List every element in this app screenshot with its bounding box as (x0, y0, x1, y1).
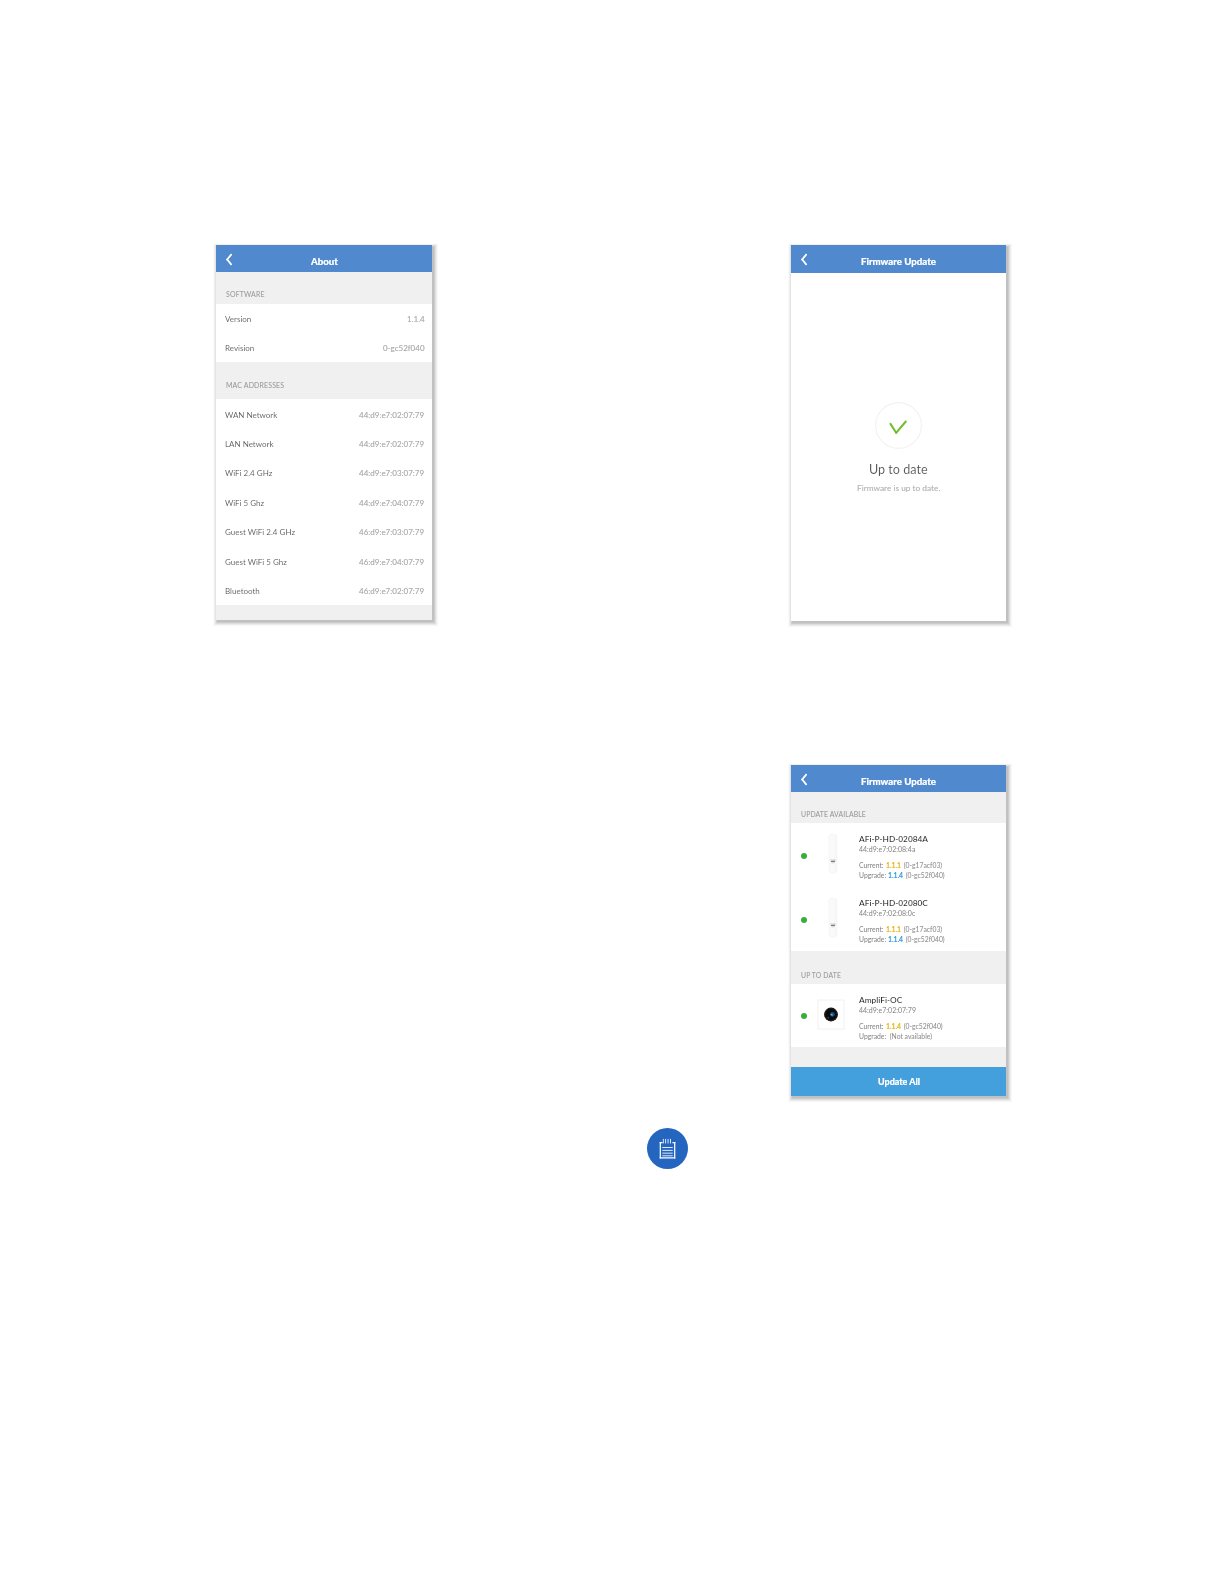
staticText: 46:d9:e7:03:07:79 (359, 527, 425, 537)
button[interactable]: Bluetooth (216, 576, 432, 605)
staticText: Current: (859, 861, 886, 869)
staticText: (0-gc52f040) (904, 871, 945, 879)
staticText: Firmware is up to date. (857, 483, 941, 493)
staticText: (0-gc52f040) (904, 935, 945, 943)
button[interactable]: AFi-P-HD-02084A (791, 823, 1006, 887)
staticText: About (311, 255, 338, 267)
staticText: (0-g17acf03) (902, 861, 943, 869)
staticText: WiFi 2.4 GHz (225, 468, 273, 478)
button[interactable]: Version (216, 304, 432, 333)
staticText: 44:d9:e7:04:07:79 (359, 498, 425, 508)
staticText: AmpliFi-OC (859, 995, 903, 1005)
staticText: Update All (878, 1076, 920, 1087)
staticText: 1.1.1 (886, 861, 902, 869)
staticText: MAC ADDRESSES (226, 381, 285, 389)
staticText: WiFi 5 Ghz (225, 498, 265, 508)
staticText: 1.1.1 (886, 925, 902, 933)
staticText: 46:d9:e7:02:07:79 (359, 586, 425, 596)
staticText: 1.1.4 (407, 314, 425, 324)
button[interactable]: Update All (791, 1067, 1006, 1096)
staticText: 44:d9:e7:02:07:79 (359, 439, 425, 449)
staticText: 44:d9:e7:02:08:4a (859, 845, 916, 853)
staticText: Upgrade: (859, 871, 888, 879)
staticText: 46:d9:e7:04:07:79 (359, 557, 425, 567)
staticText: SOFTWARE (226, 290, 265, 298)
staticText: 44:d9:e7:02:08:0c (859, 909, 916, 917)
staticText: UP TO DATE (801, 971, 841, 979)
staticText: 1.1.4 (888, 935, 904, 943)
staticText: 44:d9:e7:02:07:79 (859, 1006, 916, 1014)
button[interactable]: Guest WiFi 2.4 GHz (216, 517, 432, 546)
staticText: Guest WiFi 2.4 GHz (225, 527, 296, 537)
staticText: 0-gc52f040 (383, 343, 425, 353)
staticText: Guest WiFi 5 Ghz (225, 557, 287, 567)
staticText: Current: (859, 925, 886, 933)
button[interactable]: WAN Network (216, 400, 432, 429)
staticText: (0-g17acf03) (902, 925, 943, 933)
staticText: (Not available) (888, 1032, 932, 1040)
staticText: UPDATE AVAILABLE (801, 810, 866, 818)
staticText: 1.1.4 (888, 871, 904, 879)
staticText: AFi-P-HD-02080C (859, 898, 928, 908)
button[interactable]: Release notes (647, 1128, 688, 1169)
button[interactable]: Back (796, 251, 812, 267)
staticText: Revision (225, 343, 255, 353)
staticText: Current: (859, 1022, 886, 1030)
button[interactable]: AmpliFi-OC (791, 984, 1006, 1047)
staticText: Upgrade: (859, 1032, 888, 1040)
button[interactable]: AFi-P-HD-02080C (791, 887, 1006, 951)
staticText: WAN Network (225, 410, 278, 420)
staticText: 1.1.4 (886, 1022, 902, 1030)
button[interactable]: Back (221, 251, 237, 267)
staticText: Firmware Update (861, 255, 936, 267)
staticText: Upgrade: (859, 935, 888, 943)
button[interactable]: LAN Network (216, 429, 432, 458)
staticText: LAN Network (225, 439, 274, 449)
staticText: 44:d9:e7:02:07:79 (359, 410, 425, 420)
staticText: Version (225, 314, 252, 324)
button[interactable]: Guest WiFi 5 Ghz (216, 547, 432, 576)
staticText: (0-gc52f040) (902, 1022, 943, 1030)
staticText: Up to date (869, 462, 928, 477)
staticText: Bluetooth (225, 586, 260, 596)
button[interactable]: Back (796, 771, 812, 787)
button[interactable]: Revision (216, 333, 432, 362)
staticText: AFi-P-HD-02084A (859, 834, 929, 844)
button[interactable]: WiFi 2.4 GHz (216, 458, 432, 487)
staticText: Firmware Update (861, 775, 936, 787)
button[interactable]: WiFi 5 Ghz (216, 488, 432, 517)
staticText: 44:d9:e7:03:07:79 (359, 468, 425, 478)
